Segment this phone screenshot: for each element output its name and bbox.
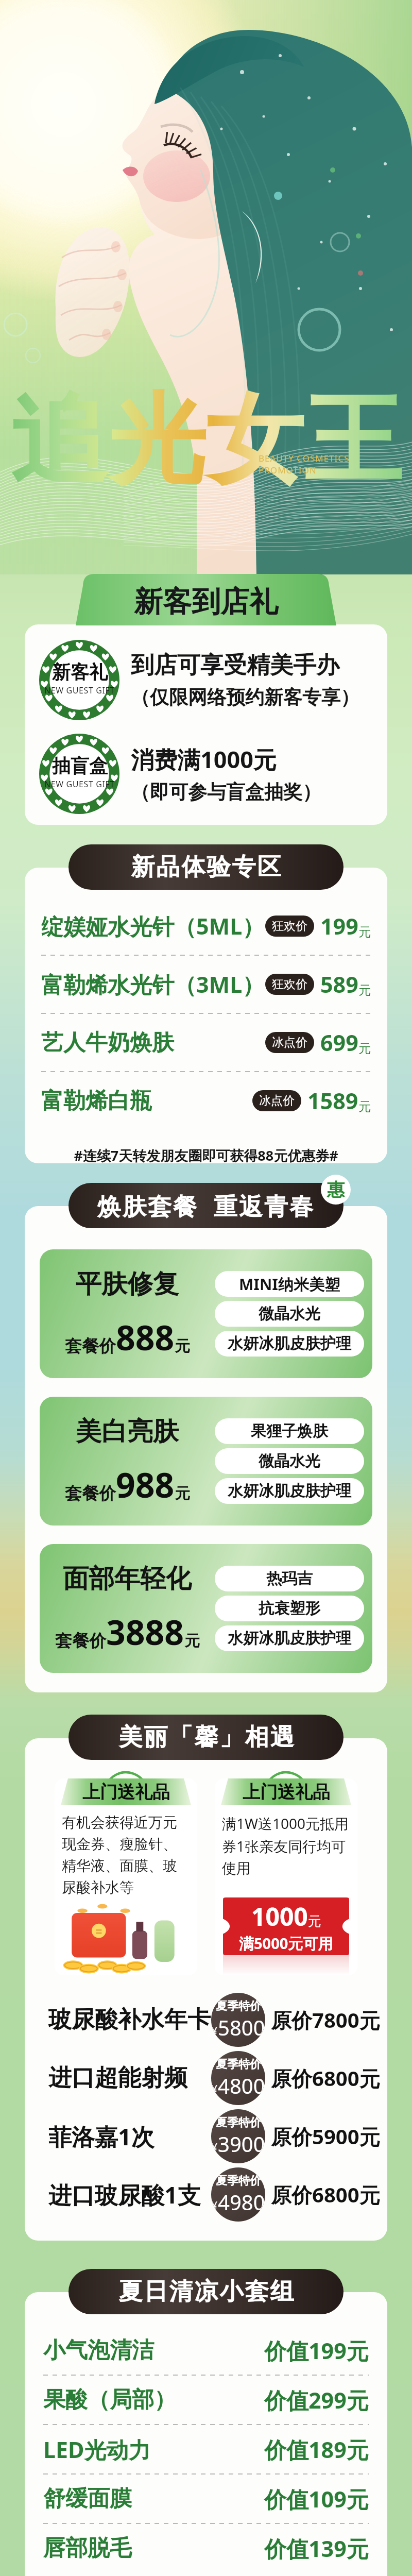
staticText: 水妍冰肌皮肤护理 bbox=[228, 1334, 351, 1353]
staticText: ¥ bbox=[211, 2140, 218, 2155]
button[interactable]: LED光动力 bbox=[43, 2425, 369, 2473]
button[interactable]: 新客礼 bbox=[39, 638, 387, 722]
staticText: 上门送礼品 bbox=[243, 1781, 330, 1803]
staticText: 小气泡清洁 bbox=[43, 2336, 154, 2364]
staticText: 元 bbox=[358, 982, 371, 998]
staticText: 589 bbox=[320, 969, 358, 999]
staticText: BEAUTY COSMETICS bbox=[259, 452, 350, 464]
staticText: LED光动力 bbox=[43, 2434, 151, 2465]
staticText: 5800 bbox=[218, 2013, 265, 2041]
staticText: 原价7800元 bbox=[271, 2006, 380, 2034]
button[interactable]: 绽媄娅水光针（5ML） bbox=[41, 897, 371, 955]
staticText: 艺人牛奶焕肤 bbox=[41, 1029, 174, 1057]
staticText: 狂欢价 bbox=[272, 919, 307, 934]
staticText: 富勒烯白瓶 bbox=[41, 1087, 152, 1115]
staticText: 原价6800元 bbox=[271, 2064, 380, 2092]
staticText: 1589 bbox=[307, 1086, 358, 1116]
staticText: 套餐价 bbox=[65, 1483, 116, 1504]
staticText: 微晶水光 bbox=[259, 1451, 320, 1471]
button[interactable]: 面部年轻化 bbox=[40, 1544, 372, 1673]
staticText: 满5000元可用 bbox=[239, 1933, 333, 1954]
staticText: 原价5900元 bbox=[271, 2122, 380, 2150]
staticText: ¥ bbox=[211, 2082, 218, 2097]
staticText: 元 bbox=[175, 1336, 190, 1356]
staticText: 1000 bbox=[251, 1900, 308, 1933]
button[interactable]: 夏日清凉小套组 bbox=[68, 2269, 344, 2314]
staticText: 888 bbox=[116, 1314, 175, 1360]
button[interactable]: 艺人牛奶焕肤 bbox=[41, 1014, 371, 1071]
button[interactable]: 舒缓面膜 bbox=[43, 2475, 369, 2523]
staticText: 抽盲盒 bbox=[52, 754, 108, 777]
staticText: 水妍冰肌皮肤护理 bbox=[228, 1481, 351, 1501]
staticText: 新客到店礼 bbox=[134, 584, 278, 620]
staticText: 新品体验专区 bbox=[130, 852, 282, 882]
button[interactable]: 进口超能射频 bbox=[25, 2049, 387, 2107]
staticText: 到店可享受精美手办 bbox=[131, 651, 339, 680]
staticText: 热玛吉 bbox=[266, 1569, 313, 1588]
staticText: 199 bbox=[320, 911, 358, 941]
staticText: 988 bbox=[116, 1461, 175, 1507]
button[interactable]: 小气泡清洁 bbox=[43, 2326, 369, 2375]
staticText: 水妍冰肌皮肤护理 bbox=[228, 1629, 351, 1648]
staticText: 追光女王 bbox=[10, 379, 402, 502]
staticText: ¥ bbox=[211, 2198, 218, 2213]
button[interactable]: 上门送礼品 bbox=[215, 1778, 357, 1975]
staticText: 夏季特价 bbox=[216, 2115, 261, 2130]
button[interactable]: 富勒烯水光针（3ML） bbox=[41, 956, 371, 1013]
staticText: 元 bbox=[308, 1913, 321, 1930]
button[interactable]: 新品体验专区 bbox=[68, 844, 344, 890]
staticText: 699 bbox=[320, 1027, 358, 1058]
staticText: 满1W送1000元抵用券1张亲友同行均可使用 bbox=[222, 1814, 350, 1878]
staticText: 美丽「馨」相遇 bbox=[118, 1722, 295, 1752]
staticText: 果酸（局部） bbox=[43, 2386, 176, 2414]
staticText: 平肤修复 bbox=[76, 1268, 179, 1300]
staticText: 价值139元 bbox=[264, 2533, 369, 2564]
staticText: 4980 bbox=[218, 2188, 265, 2216]
staticText: 夏季特价 bbox=[216, 2174, 261, 2188]
staticText: 消费满1000元 bbox=[131, 743, 277, 775]
staticText: 夏季特价 bbox=[216, 2057, 261, 2072]
staticText: 富勒烯水光针（3ML） bbox=[41, 969, 265, 999]
staticText: 唇部脱毛 bbox=[43, 2534, 132, 2562]
staticText: 焕肤套餐 重返青春 bbox=[97, 1190, 315, 1222]
staticText: 果狸子焕肤 bbox=[251, 1421, 328, 1441]
staticText: 抗衰塑形 bbox=[259, 1599, 320, 1618]
staticText: 微晶水光 bbox=[259, 1304, 320, 1324]
button[interactable]: 菲洛嘉1次 bbox=[25, 2107, 387, 2165]
staticText: （仅限网络预约新客专享） bbox=[131, 685, 359, 709]
button[interactable]: 美丽「馨」相遇 bbox=[68, 1715, 344, 1760]
staticText: 价值299元 bbox=[264, 2385, 369, 2415]
staticText: 进口玻尿酸1支 bbox=[48, 2179, 201, 2210]
staticText: 新客礼 bbox=[52, 660, 108, 684]
button[interactable]: 美白亮肤 bbox=[40, 1397, 372, 1526]
button[interactable]: 进口玻尿酸1支 bbox=[25, 2165, 387, 2224]
button[interactable]: 唇部脱毛 bbox=[43, 2524, 369, 2572]
button[interactable]: 抽盲盒 bbox=[39, 732, 387, 816]
staticText: 元 bbox=[184, 1631, 200, 1651]
staticText: 狂欢价 bbox=[272, 977, 307, 992]
staticText: 菲洛嘉1次 bbox=[48, 2121, 154, 2152]
staticText: 绽媄娅水光针（5ML） bbox=[41, 911, 265, 941]
other: 优惠 bbox=[321, 1175, 351, 1205]
button[interactable]: 上门送礼品 bbox=[55, 1778, 197, 1975]
staticText: 夏日清凉小套组 bbox=[118, 2277, 295, 2307]
button[interactable]: 富勒烯白瓶 bbox=[41, 1072, 371, 1129]
staticText: MINI纳米美塑 bbox=[239, 1274, 340, 1295]
staticText: 3900 bbox=[218, 2130, 265, 2158]
staticText: 上门送礼品 bbox=[82, 1781, 170, 1803]
staticText: NEW GUEST GIFT bbox=[44, 778, 115, 790]
staticText: 套餐价 bbox=[65, 1335, 116, 1357]
staticText: 元 bbox=[175, 1484, 190, 1503]
staticText: 4800 bbox=[218, 2072, 265, 2099]
staticText: 惠 bbox=[327, 1179, 345, 1201]
button[interactable]: 焕肤套餐 重返青春 bbox=[68, 1183, 344, 1228]
button[interactable]: 玻尿酸补水年卡 bbox=[25, 1991, 387, 2049]
staticText: 冰点价 bbox=[259, 1093, 295, 1108]
staticText: 夏季特价 bbox=[216, 1999, 261, 2013]
button[interactable]: 果酸（局部） bbox=[43, 2376, 369, 2424]
staticText: 元 bbox=[358, 1099, 371, 1114]
button[interactable]: 平肤修复 bbox=[40, 1249, 372, 1378]
staticText: 进口超能射频 bbox=[48, 2063, 187, 2093]
staticText: 冰点价 bbox=[272, 1035, 307, 1050]
staticText: 价值189元 bbox=[264, 2434, 369, 2465]
